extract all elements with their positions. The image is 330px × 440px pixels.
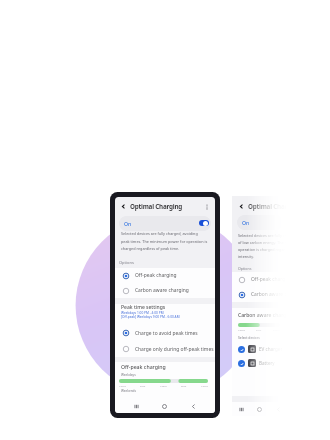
staticText: Weekdays 1:00 PM - 4:00 PM <box>121 311 164 315</box>
button[interactable]: Back <box>119 202 128 211</box>
staticText: On <box>242 219 250 226</box>
button[interactable]: On <box>119 216 211 231</box>
staticText: Off-peak charging <box>251 276 288 283</box>
button[interactable]: Carbon aware charging <box>232 287 288 302</box>
button[interactable]: Charge only during off-peak times <box>115 341 215 357</box>
staticText: Charge to avoid peak times <box>135 330 198 337</box>
staticText: Carbon aware charging <box>238 312 288 319</box>
button[interactable]: Home <box>250 402 269 416</box>
staticText: Weekends <box>121 389 136 393</box>
button[interactable]: Back <box>115 197 215 216</box>
staticText: [Off-peak] Weekdays 9:00 PM - 6:00 AM <box>121 315 180 319</box>
button[interactable]: Battery <box>232 356 288 370</box>
staticText: Options <box>238 266 252 271</box>
staticText: 6PM <box>181 384 187 387</box>
staticText: 12AM <box>201 384 208 387</box>
staticText: Select devices <box>238 335 260 340</box>
button[interactable]: EV charger <box>232 342 288 356</box>
staticText: Peak time settings <box>121 304 166 311</box>
button[interactable]: Charge to avoid peak times <box>115 325 215 341</box>
button[interactable]: Carbon aware charging <box>115 283 215 298</box>
staticText: Selected devices are fully charged, avoi… <box>121 231 208 251</box>
staticText: Off-peak charging <box>121 363 166 370</box>
staticText: Carbon aware charging <box>135 287 189 294</box>
staticText: Optimal Charging <box>248 202 301 211</box>
staticText: Options <box>119 260 134 265</box>
button[interactable]: Recents <box>232 402 250 416</box>
button[interactable]: Back <box>179 399 208 413</box>
staticText: On <box>124 220 132 227</box>
staticText: 12AM <box>119 384 126 387</box>
staticText: Weekdays <box>121 373 136 377</box>
staticText: Battery <box>259 360 275 366</box>
staticText: EV charger <box>259 346 283 352</box>
button[interactable]: Off-peak charging <box>232 272 288 287</box>
button[interactable]: Off-peak charging <box>115 268 215 283</box>
button[interactable]: Recents <box>122 399 150 413</box>
staticText: 12AM <box>238 328 245 331</box>
staticText: Off-peak charging <box>135 272 177 279</box>
staticText: Carbon aware charging <box>251 291 288 298</box>
button[interactable]: More options <box>202 202 211 211</box>
staticText: 6AM <box>256 328 262 331</box>
staticText: Selected devices are fully charged, avoi… <box>238 233 330 260</box>
staticText: Charge only during off-peak times <box>135 346 214 353</box>
staticText: 6AM <box>140 384 146 387</box>
button[interactable]: Home <box>150 399 179 413</box>
staticText: Optimal Charging <box>130 202 183 211</box>
staticText: 12PM <box>160 384 167 387</box>
